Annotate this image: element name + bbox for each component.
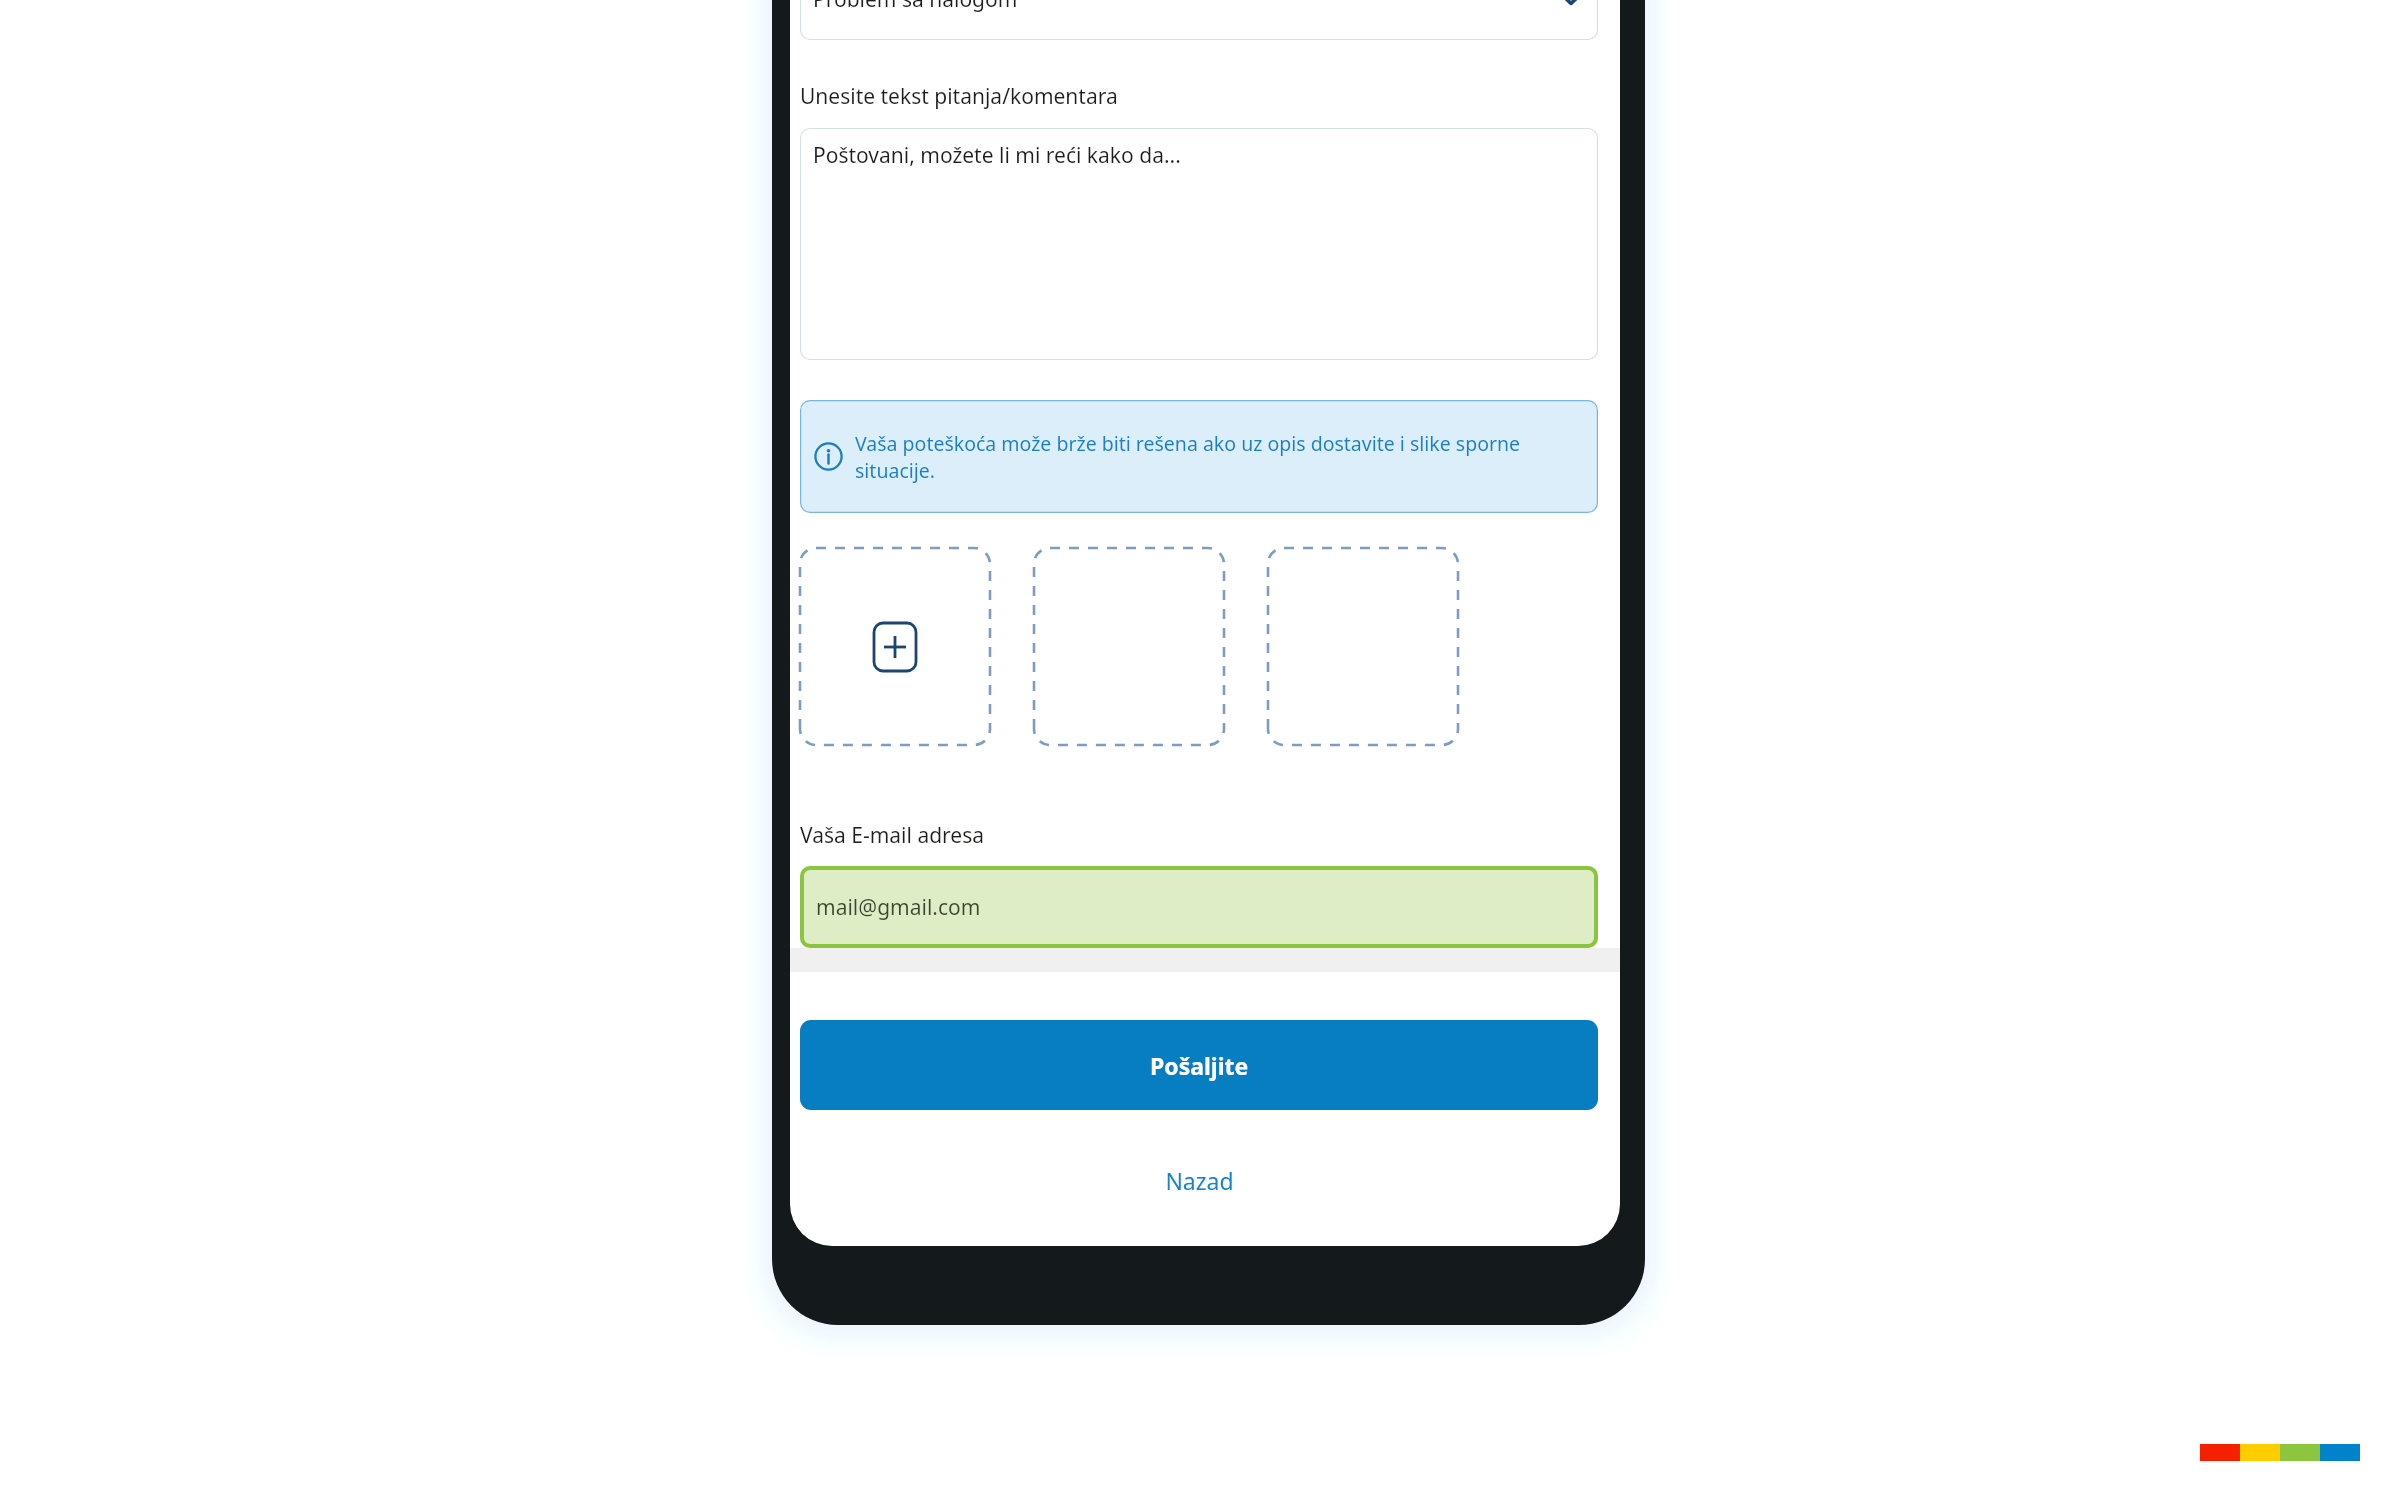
staticText: Pošaljite	[1150, 1050, 1249, 1081]
button[interactable]: mail@gmail.com	[800, 866, 1598, 948]
button[interactable]: Problem sa nalogom	[800, 0, 1598, 40]
button[interactable]: Dodaj sliku	[800, 548, 990, 745]
button[interactable]: Pošaljite	[800, 1020, 1598, 1110]
button[interactable]: Nazad	[800, 1148, 1598, 1212]
button[interactable]: Prazno mesto za sliku	[1034, 548, 1224, 745]
staticText: Unesite tekst pitanja/komentara	[800, 82, 1118, 111]
staticText: mail@gmail.com	[816, 893, 981, 922]
staticText: Poštovani, možete li mi reći kako da...	[813, 141, 1181, 170]
staticText: Problem sa nalogom	[813, 0, 1018, 14]
button[interactable]: Prazno mesto za sliku	[1268, 548, 1458, 745]
button[interactable]: Dodaj	[874, 623, 916, 671]
staticText: Vaša poteškoća može brže biti rešena ako…	[855, 430, 1584, 484]
staticText: Vaša E-mail adresa	[800, 821, 985, 850]
staticText: Nazad	[1165, 1165, 1234, 1196]
button[interactable]: Poštovani, možete li mi reći kako da...	[800, 128, 1598, 360]
